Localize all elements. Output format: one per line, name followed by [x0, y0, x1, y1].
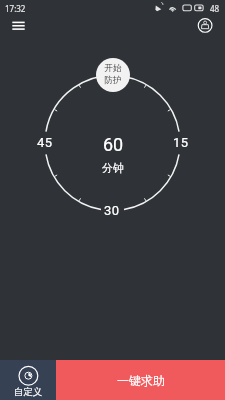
staticText: 60	[103, 134, 124, 152]
staticText: 开始	[104, 63, 122, 74]
staticText: 防护	[104, 75, 122, 86]
staticText: 分钟	[102, 161, 124, 175]
button[interactable]: 一键求助	[56, 360, 225, 400]
button[interactable]: Account	[193, 13, 217, 37]
button[interactable]: 开始	[96, 58, 130, 92]
staticText: 17:32	[5, 3, 26, 14]
staticText: 48	[210, 3, 220, 14]
button[interactable]: 自定义	[0, 360, 56, 400]
staticText: 30	[104, 203, 120, 218]
staticText: 15	[173, 135, 189, 150]
staticText: 45	[37, 135, 53, 150]
staticText: 自定义	[0, 386, 56, 398]
button[interactable]: Menu	[6, 14, 31, 39]
staticText: 一键求助	[117, 373, 165, 388]
